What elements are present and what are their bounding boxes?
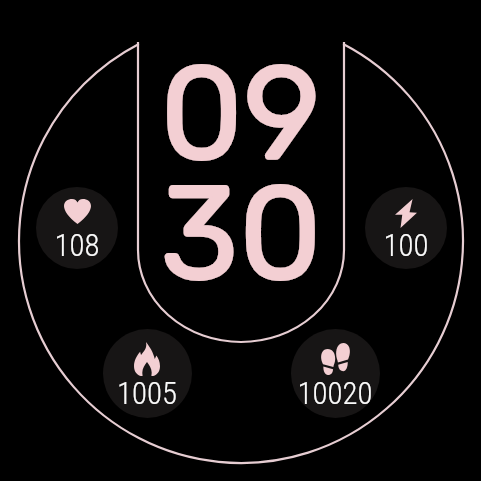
staticText: 30 [160, 157, 322, 312]
staticText: 10020 [275, 375, 395, 415]
button[interactable]: Calories burned [103, 329, 192, 418]
button[interactable]: Steps [291, 329, 380, 418]
staticText: 108 [17, 227, 137, 267]
button[interactable]: Heart rate [36, 187, 118, 269]
button[interactable]: Battery [365, 187, 447, 269]
staticText: 09 [160, 37, 321, 192]
staticText: 09 [160, 37, 321, 192]
staticText: 30 [160, 157, 322, 312]
staticText: 100 [346, 227, 466, 267]
staticText: 1005 [87, 375, 207, 415]
